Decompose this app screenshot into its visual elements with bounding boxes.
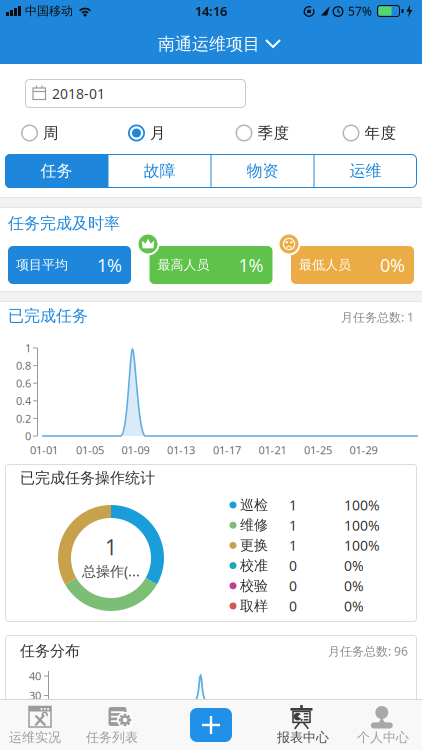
staticText: 1: [289, 516, 297, 535]
staticText: 维修: [240, 516, 268, 534]
staticText: 0%: [344, 556, 364, 575]
staticText: 任务分布: [20, 642, 80, 660]
staticText: 取样: [240, 597, 268, 615]
staticText: 任务: [40, 161, 72, 181]
button[interactable]: 选择日期: [25, 79, 246, 108]
staticText: 最高人员: [157, 257, 209, 273]
staticText: 1: [289, 495, 297, 515]
button[interactable]: 新建: [190, 708, 232, 742]
staticText: 01-21: [258, 442, 286, 457]
staticText: 40: [29, 668, 41, 683]
staticText: 2018-01: [52, 84, 105, 103]
staticText: 已完成任务操作统计: [20, 469, 155, 487]
staticText: 1: [105, 533, 117, 561]
staticText: 校验: [240, 577, 268, 595]
staticText: 物资: [246, 161, 278, 181]
staticText: 100%: [344, 536, 380, 555]
staticText: 南通运维项目: [158, 33, 260, 55]
staticText: 1%: [97, 253, 122, 277]
staticText: 01-29: [349, 442, 377, 457]
staticText: 57%: [348, 3, 372, 19]
staticText: 01-17: [213, 442, 241, 457]
staticText: 任务列表: [86, 729, 138, 746]
staticText: 故障: [143, 161, 175, 181]
staticText: 0%: [344, 576, 364, 595]
staticText: 项目平均: [16, 257, 68, 273]
staticText: 0: [289, 596, 297, 616]
staticText: 0.2: [16, 411, 31, 426]
staticText: 01-01: [30, 442, 58, 457]
staticText: 0: [25, 428, 31, 443]
staticText: 月: [150, 123, 166, 143]
staticText: 0%: [344, 596, 364, 616]
staticText: 月任务总数: 96: [328, 643, 408, 659]
staticText: 更换: [240, 537, 268, 554]
button[interactable]: 年度: [342, 123, 396, 143]
button[interactable]: 任务列表: [72, 699, 156, 750]
staticText: 1%: [238, 253, 263, 277]
staticText: 报表中心: [277, 729, 329, 746]
button[interactable]: 个人中心: [341, 699, 422, 750]
button[interactable]: 选择项目: [0, 0, 422, 64]
staticText: 总操作(...: [82, 561, 140, 581]
staticText: 0: [289, 556, 297, 575]
staticText: 0.8: [16, 358, 31, 373]
staticText: 01-09: [121, 442, 149, 457]
staticText: 个人中心: [357, 729, 409, 746]
staticText: 年度: [364, 123, 396, 143]
staticText: 14:16: [195, 2, 227, 20]
staticText: 100%: [344, 495, 380, 515]
staticText: 季度: [257, 123, 289, 143]
button[interactable]: 月: [128, 123, 166, 143]
staticText: 已完成任务: [8, 306, 88, 326]
button[interactable]: 运维: [314, 154, 417, 188]
staticText: 1: [25, 340, 31, 355]
button[interactable]: 报表中心: [259, 699, 343, 750]
staticText: 月任务总数: 1: [341, 309, 414, 325]
button[interactable]: 运维实况: [0, 699, 80, 750]
staticText: 100%: [344, 516, 380, 535]
staticText: 运维: [349, 161, 381, 181]
staticText: 周: [43, 123, 59, 143]
staticText: 最低人员: [299, 257, 351, 273]
staticText: 1: [289, 536, 297, 555]
button[interactable]: 故障: [108, 154, 211, 188]
button[interactable]: 季度: [235, 123, 289, 143]
staticText: 01-13: [167, 442, 195, 457]
button[interactable]: 任务: [5, 154, 108, 188]
staticText: 0.6: [16, 376, 31, 391]
staticText: 01-05: [76, 442, 104, 457]
staticText: 任务完成及时率: [8, 213, 120, 234]
button[interactable]: 周: [21, 123, 59, 143]
staticText: 中国移动: [25, 3, 73, 18]
staticText: 0: [289, 576, 297, 595]
staticText: 0.4: [16, 393, 31, 408]
staticText: 运维实况: [9, 729, 61, 746]
button[interactable]: 物资: [211, 154, 314, 188]
staticText: 巡检: [240, 496, 268, 514]
staticText: 校准: [240, 557, 268, 574]
staticText: 0%: [380, 253, 405, 277]
staticText: 01-25: [304, 442, 332, 457]
staticText: 30: [29, 688, 41, 703]
